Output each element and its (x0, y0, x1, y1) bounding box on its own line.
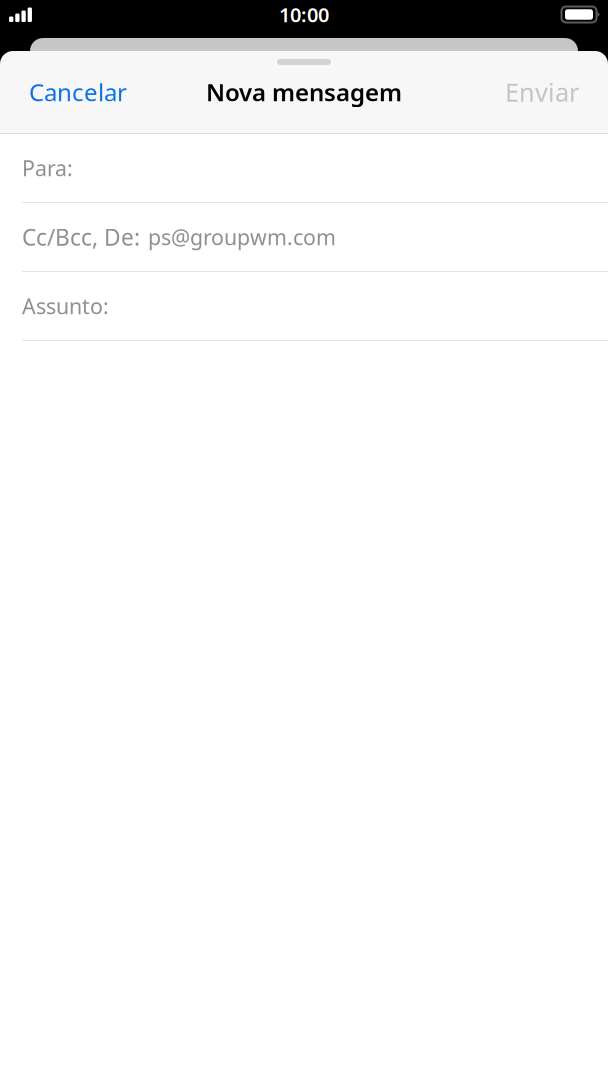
staticText: 10:00 (279, 1, 329, 28)
staticText: ps@groupwm.com (148, 223, 336, 251)
button[interactable]: Cc/Bcc, De: (0, 203, 608, 271)
staticText: Nova mensagem (206, 76, 402, 108)
staticText: Assunto: (22, 292, 109, 320)
button[interactable]: Cancelar (0, 65, 141, 119)
staticText: Cancelar (29, 76, 127, 108)
staticText: Para: (22, 154, 73, 182)
staticText: Enviar (505, 75, 579, 109)
staticText: Cc/Bcc, De: (22, 222, 140, 252)
button[interactable]: Para: (0, 134, 608, 202)
button[interactable]: Enviar (491, 65, 608, 119)
button[interactable]: Assunto: (0, 272, 608, 340)
